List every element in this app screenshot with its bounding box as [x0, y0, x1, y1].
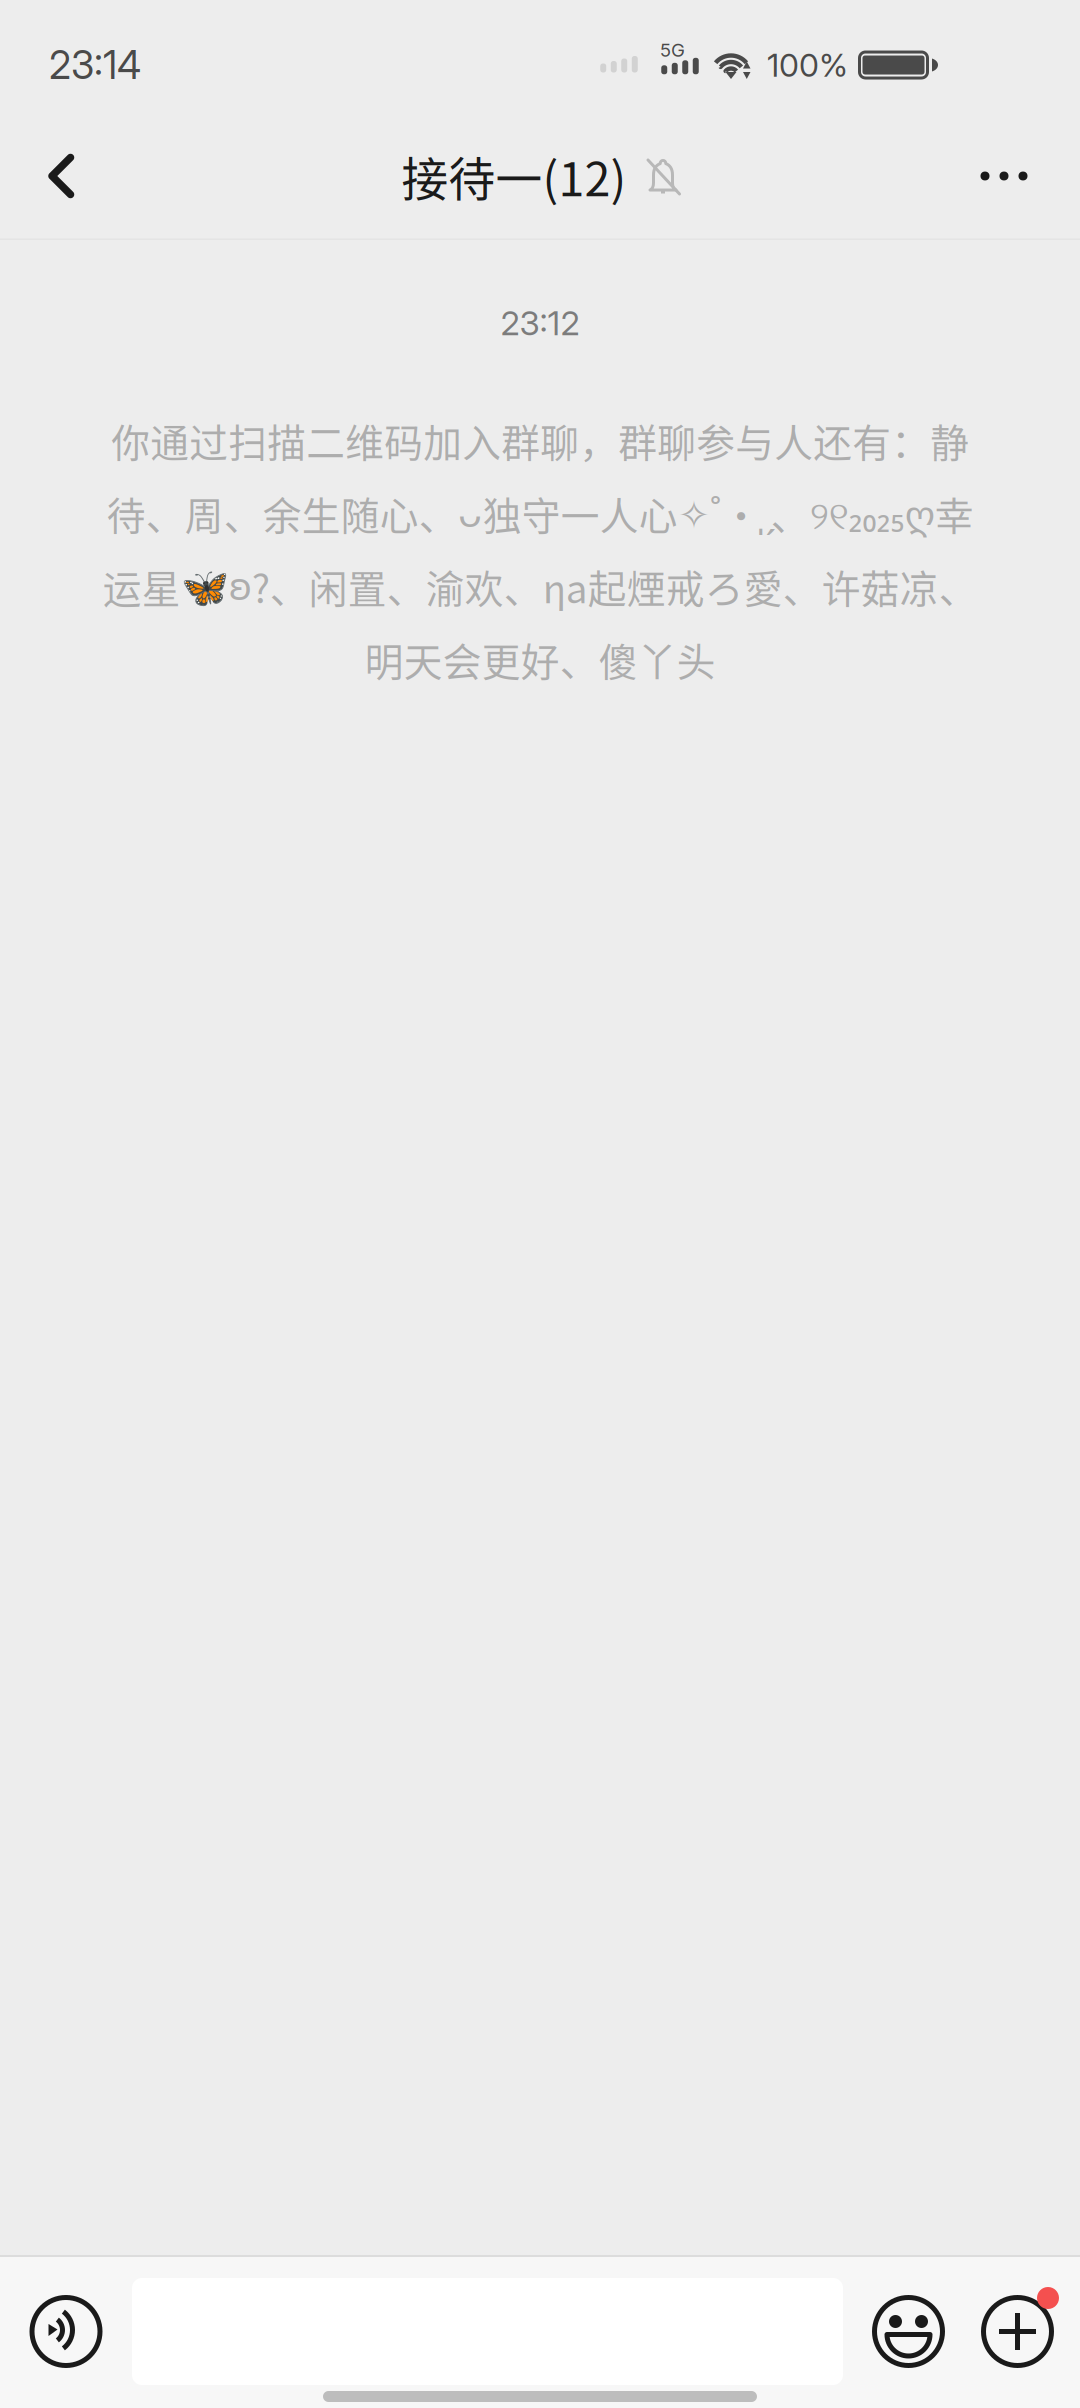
button[interactable]: Emoji: [872, 2295, 945, 2368]
staticText: 23:14: [49, 42, 141, 88]
button[interactable]: Back: [11, 126, 111, 226]
staticText: 你通过扫描二维码加入群聊，群聊参与人还有：静待、周、余生随心、ᴗ独守一人心✧˚·…: [102, 412, 977, 687]
button[interactable]: Voice input: [30, 2295, 102, 2367]
staticText: 5G: [660, 39, 685, 61]
staticText: 23:12: [500, 303, 579, 343]
staticText: 接待一(12): [401, 142, 626, 210]
button[interactable]: More options: [981, 2295, 1054, 2368]
button[interactable]: More: [954, 126, 1054, 226]
staticText: 100%: [767, 46, 848, 84]
